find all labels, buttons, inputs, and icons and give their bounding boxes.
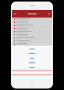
button[interactable] (12, 30, 52, 33)
button[interactable] (12, 47, 52, 51)
button[interactable] (12, 60, 52, 65)
button[interactable] (12, 27, 52, 30)
button[interactable]: More (47, 12, 51, 15)
button[interactable] (12, 18, 52, 21)
button[interactable] (12, 36, 52, 39)
button[interactable] (12, 43, 52, 46)
button[interactable] (12, 51, 52, 56)
button[interactable]: Back (13, 12, 17, 15)
button[interactable] (12, 56, 52, 60)
button[interactable] (12, 24, 52, 27)
button[interactable] (12, 65, 52, 70)
button[interactable] (12, 39, 52, 43)
button[interactable] (12, 21, 52, 24)
button[interactable] (12, 33, 52, 36)
